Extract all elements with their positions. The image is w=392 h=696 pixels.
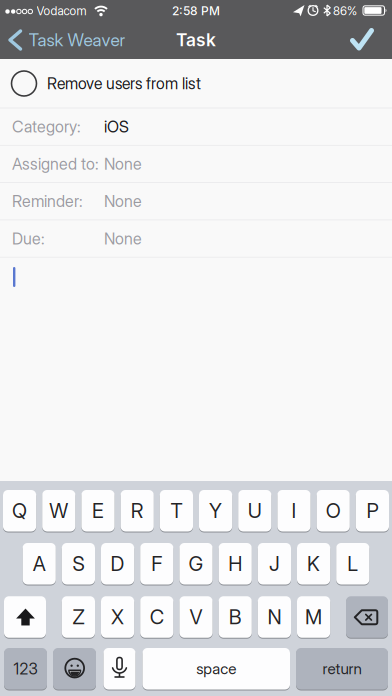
button[interactable]: I	[277, 489, 311, 532]
staticText: S	[72, 552, 84, 576]
staticText: Due:	[12, 229, 45, 248]
button[interactable]: Q	[3, 489, 36, 532]
button[interactable]: return	[296, 647, 388, 690]
staticText: W	[49, 499, 68, 523]
button[interactable]: R	[121, 489, 154, 532]
staticText: iOS	[104, 117, 129, 136]
button[interactable]: S	[62, 542, 95, 585]
button[interactable]: B	[219, 596, 252, 638]
staticText: H	[228, 552, 242, 576]
staticText: D	[111, 552, 125, 576]
button[interactable]: Remove users from list	[0, 59, 392, 108]
button[interactable]: E	[81, 489, 115, 532]
button[interactable]: X	[101, 596, 134, 638]
button[interactable]: space	[142, 647, 290, 690]
button[interactable]: Z	[62, 596, 95, 638]
button[interactable]: Emoji	[53, 647, 96, 690]
staticText: B	[229, 605, 242, 629]
staticText: G	[188, 552, 203, 576]
button[interactable]: 123	[4, 647, 47, 690]
staticText: 2:58 PM	[172, 4, 220, 18]
staticText: V	[189, 605, 202, 629]
button[interactable]: G	[179, 542, 213, 585]
staticText: Remove users from list	[47, 74, 201, 93]
button[interactable]: Category:	[0, 108, 392, 145]
staticText: None	[104, 192, 142, 211]
staticText: P	[366, 499, 378, 523]
staticText: return	[322, 659, 361, 678]
button[interactable]: V	[179, 596, 213, 638]
button[interactable]: Done	[349, 29, 374, 50]
button[interactable]: M	[297, 596, 330, 638]
staticText: C	[150, 605, 164, 629]
button[interactable]: P	[356, 489, 389, 532]
staticText: Task Weaver	[28, 29, 125, 50]
button[interactable]: Assigned to:	[0, 145, 392, 183]
staticText: M	[305, 605, 322, 629]
staticText: None	[104, 229, 142, 248]
staticText: L	[347, 552, 358, 576]
button[interactable]: Delete	[346, 596, 388, 638]
button[interactable]: A	[23, 542, 56, 585]
button[interactable]: Shift	[4, 596, 46, 638]
staticText: Category:	[12, 117, 81, 136]
staticText: 123	[13, 659, 37, 678]
staticText: I	[291, 499, 296, 523]
button[interactable]: Due:	[0, 220, 392, 257]
button[interactable]: C	[140, 596, 173, 638]
button[interactable]: L	[336, 542, 369, 585]
staticText: None	[104, 154, 142, 174]
staticText: Y	[209, 499, 222, 523]
button[interactable]: K	[297, 542, 330, 585]
staticText: R	[131, 499, 144, 523]
staticText: A	[33, 552, 46, 576]
staticText: O	[326, 499, 341, 523]
staticText: Vodacom	[36, 4, 86, 18]
button[interactable]: Reminder:	[0, 183, 392, 220]
button[interactable]: W	[42, 489, 75, 532]
button[interactable]: J	[258, 542, 291, 585]
staticText: 86%	[333, 4, 357, 18]
button[interactable]: Task Weaver	[0, 21, 220, 58]
staticText: Task	[176, 29, 216, 50]
staticText: T	[170, 499, 182, 523]
staticText: X	[111, 605, 124, 629]
button[interactable]: O	[317, 489, 350, 532]
staticText: space	[196, 659, 236, 678]
button[interactable]: Y	[199, 489, 232, 532]
staticText: F	[151, 552, 162, 576]
button[interactable]: U	[238, 489, 271, 532]
button[interactable]: N	[258, 596, 291, 638]
staticText: Assigned to:	[12, 154, 99, 174]
button[interactable]: T	[160, 489, 193, 532]
button[interactable]: D	[101, 542, 134, 585]
staticText: N	[267, 605, 281, 629]
staticText: J	[269, 552, 280, 576]
staticText: K	[307, 552, 320, 576]
staticText: U	[248, 499, 262, 523]
staticText: Z	[72, 605, 84, 629]
staticText: Reminder:	[12, 192, 83, 211]
button[interactable]: H	[219, 542, 252, 585]
staticText: Q	[12, 499, 27, 523]
button[interactable]: Dictate	[103, 647, 135, 690]
button[interactable]: F	[140, 542, 173, 585]
staticText: E	[92, 499, 104, 523]
